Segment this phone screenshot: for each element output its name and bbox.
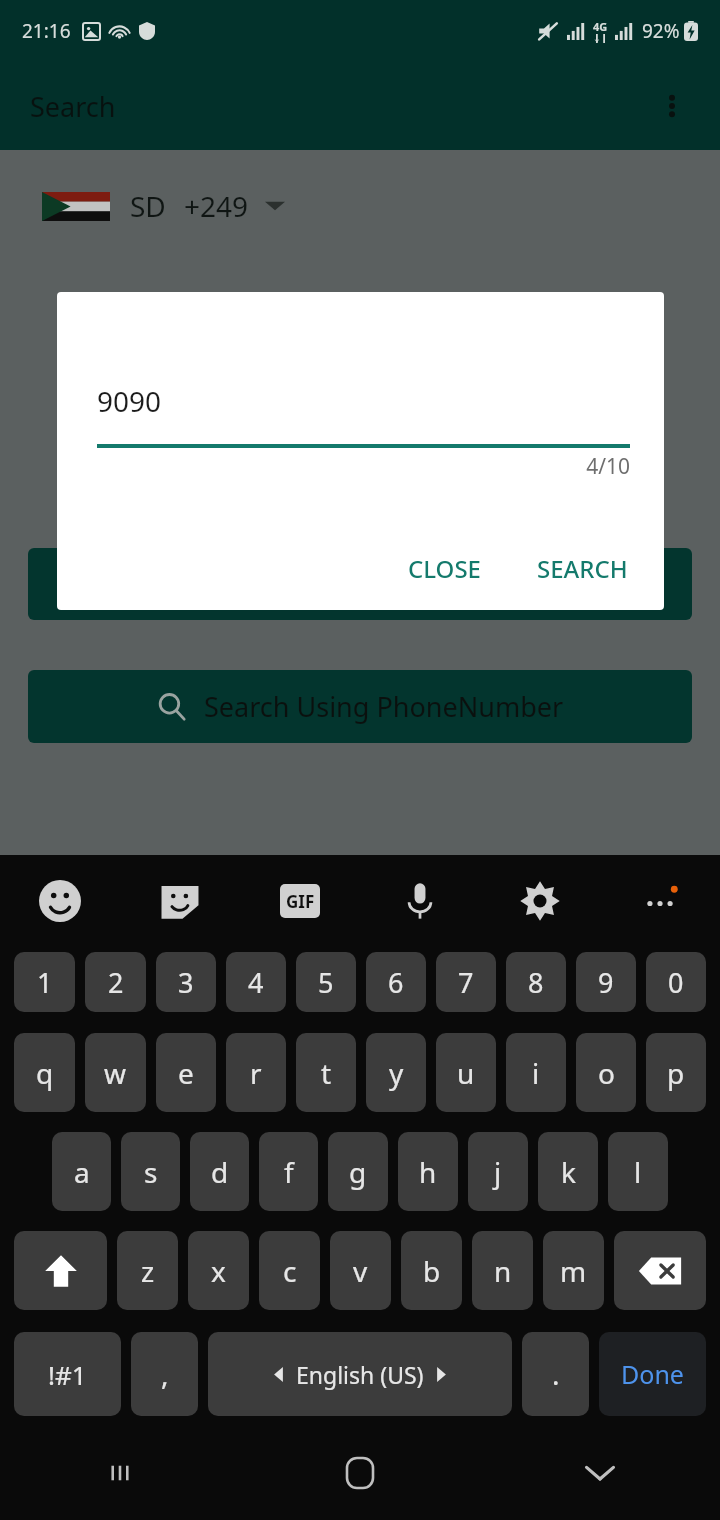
button[interactable]: i [506,1033,566,1112]
staticText: 4 [248,964,264,1001]
staticText: 21:16 [22,18,71,44]
button[interactable]: SD [42,176,285,236]
staticText: c [283,1252,297,1290]
button[interactable]: More options [600,855,720,947]
button[interactable]: Recents [0,1425,240,1520]
staticText: +249 [184,187,249,225]
staticText: 5 [318,964,334,1001]
button[interactable]: Search [28,548,692,620]
staticText: e [178,1054,194,1092]
staticText: SEARCH [537,552,628,585]
staticText: 1 [37,964,53,1001]
button[interactable]: 8 [506,952,566,1012]
staticText: m [560,1252,587,1290]
staticText: v [353,1252,368,1290]
button[interactable]: a [52,1132,111,1211]
staticText: Search Using PhoneNumber [204,688,564,725]
staticText: q [36,1054,54,1092]
button[interactable]: j [468,1132,528,1211]
button[interactable]: 3 [156,952,216,1012]
button[interactable]: Emoji [0,855,120,947]
button[interactable]: c [259,1231,320,1310]
staticText: Search [30,88,116,125]
staticText: SD [130,187,166,225]
staticText: GIF [286,890,315,913]
button[interactable]: !#1 [14,1332,121,1416]
staticText: t [321,1054,332,1092]
staticText: Done [621,1357,684,1391]
button[interactable]: . [522,1332,589,1416]
button[interactable]: d [190,1132,249,1211]
button[interactable]: More options [644,78,700,134]
button[interactable]: 5 [296,952,356,1012]
button[interactable]: o [576,1033,636,1112]
button[interactable]: Space [208,1332,512,1416]
button[interactable]: Keyboard settings [480,855,600,947]
button[interactable]: y [366,1033,426,1112]
staticText: b [423,1252,441,1290]
staticText: English (US) [296,1359,424,1390]
button[interactable]: z [117,1231,178,1310]
button[interactable]: b [401,1231,462,1310]
staticText: w [104,1054,127,1092]
button[interactable]: Stickers [120,855,240,947]
staticText: n [494,1252,512,1290]
button[interactable]: 1 [14,952,75,1012]
staticText: 92% [642,18,680,44]
button[interactable]: u [436,1033,496,1112]
button[interactable]: l [608,1132,668,1211]
staticText: l [634,1153,642,1191]
button[interactable]: f [259,1132,318,1211]
button[interactable]: t [296,1033,356,1112]
staticText: 0 [668,964,684,1001]
button[interactable]: Hide keyboard [480,1425,720,1520]
staticText: u [457,1054,475,1092]
staticText: 3 [178,964,194,1001]
button[interactable]: Shift [14,1231,107,1310]
button[interactable]: , [131,1332,198,1416]
button[interactable]: n [472,1231,533,1310]
staticText: 9 [598,964,614,1001]
button[interactable]: v [330,1231,391,1310]
button[interactable]: Voice input [360,855,480,947]
button[interactable]: w [85,1033,146,1112]
button[interactable]: 7 [436,952,496,1012]
button[interactable]: CLOSE [392,540,497,597]
staticText: y [389,1054,404,1092]
button[interactable]: GIF [240,855,360,947]
button[interactable]: Search Using PhoneNumber [28,670,692,743]
button[interactable]: 4 [226,952,286,1012]
staticText: !#1 [48,1357,87,1392]
button[interactable]: m [543,1231,604,1310]
staticText: j [494,1153,502,1191]
button[interactable]: g [328,1132,388,1211]
staticText: . [552,1355,560,1393]
staticText: g [349,1153,367,1191]
button[interactable]: 6 [366,952,426,1012]
staticText: h [419,1153,437,1191]
staticText: d [211,1153,229,1191]
staticText: 4/10 [57,452,630,481]
button[interactable]: 2 [85,952,146,1012]
button[interactable]: e [156,1033,216,1112]
staticText: CLOSE [408,552,481,585]
button[interactable]: Done [599,1332,706,1416]
button[interactable]: r [226,1033,286,1112]
button[interactable]: h [398,1132,458,1211]
button[interactable]: x [188,1231,249,1310]
button[interactable]: q [14,1033,75,1112]
staticText: 8 [528,964,544,1001]
button[interactable]: 9 [576,952,636,1012]
staticText: p [667,1054,685,1092]
staticText: , [161,1355,169,1393]
button[interactable]: s [121,1132,180,1211]
staticText: s [144,1153,158,1191]
button[interactable]: 0 [646,952,706,1012]
button[interactable]: Backspace [614,1231,706,1310]
staticText: x [211,1252,226,1290]
button[interactable]: p [646,1033,706,1112]
staticText: i [532,1054,540,1092]
button[interactable]: SEARCH [521,540,644,597]
button[interactable]: Home [240,1425,480,1520]
button[interactable]: k [538,1132,598,1211]
